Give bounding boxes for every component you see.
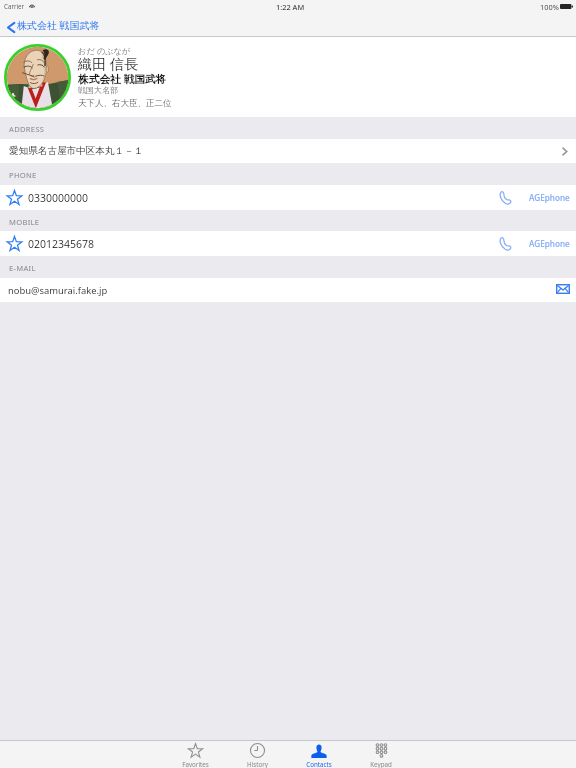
button[interactable]: 愛知県名古屋市中区本丸１－１ [0,139,576,163]
staticText: 02012345678 [28,237,95,251]
other: Favorite [6,189,23,206]
staticText: PHONE [9,170,37,180]
button[interactable]: Contacts [288,741,350,768]
other: Favorite [6,235,23,252]
other: Call [499,191,512,205]
staticText: AGEphone [529,238,570,249]
staticText: Carrier [4,2,25,10]
staticText: 株式会社 戦国武将 [17,18,100,32]
button[interactable]: Keypad [350,741,412,768]
staticText: AGEphone [529,192,570,203]
staticText: 愛知県名古屋市中区本丸１－１ [9,145,144,157]
button[interactable]: 株式会社 戦国武将 [0,18,108,36]
staticText: 1:22 AM [276,2,305,12]
other: Call [499,237,512,251]
staticText: 戦国大名部 [78,85,118,95]
staticText: E-MAIL [9,263,36,273]
button[interactable]: Favorite [0,231,576,256]
button[interactable]: Favorite [0,185,576,210]
staticText: ADDRESS [9,124,45,134]
button[interactable]: History [226,741,288,768]
staticText: 株式会社 戦国武将 [78,72,167,87]
staticText: おだ のぶなが [78,45,131,56]
button[interactable]: nobu@samurai.fake.jp [0,278,576,302]
staticText: Favorites [182,760,209,768]
staticText: 織田 信長 [78,54,139,73]
staticText: 100% [540,2,559,12]
staticText: Keypad [370,760,392,768]
staticText: 天下人、右大臣、正二位 [78,98,172,109]
other: Send email [556,284,570,294]
staticText: 0330000000 [28,191,89,205]
staticText: History [247,760,268,768]
staticText: nobu@samurai.fake.jp [8,284,108,297]
staticText: MOBILE [9,217,40,227]
button[interactable]: Favorites [164,741,226,768]
staticText: Contacts [306,760,332,768]
